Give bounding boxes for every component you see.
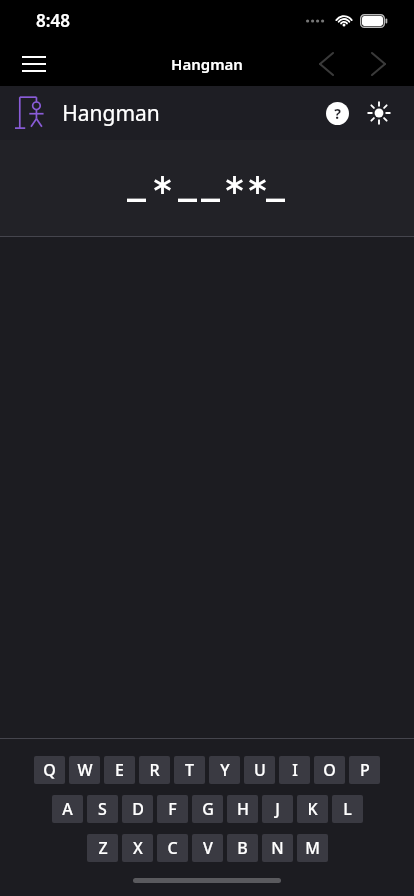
staticText: Q (43, 759, 56, 781)
button[interactable]: X (122, 834, 153, 862)
staticText: C (167, 837, 178, 859)
button[interactable]: M (297, 834, 328, 862)
staticText: I (292, 759, 298, 781)
button[interactable]: L (332, 795, 363, 823)
button[interactable]: D (122, 795, 153, 823)
staticText: Hangman (171, 54, 243, 74)
button[interactable]: K (297, 795, 328, 823)
staticText: ? (334, 104, 341, 123)
staticText: Y (220, 759, 230, 781)
button[interactable]: Forward (358, 44, 398, 84)
button[interactable]: P (349, 756, 380, 784)
button[interactable]: O (314, 756, 345, 784)
staticText: Hangman (62, 99, 160, 128)
button[interactable]: R (139, 756, 170, 784)
staticText: F (168, 798, 177, 820)
button[interactable]: U (244, 756, 275, 784)
button[interactable]: B (227, 834, 258, 862)
button[interactable]: J (262, 795, 293, 823)
staticText: M (305, 837, 320, 859)
staticText: O (323, 759, 336, 781)
staticText: T (185, 759, 194, 781)
button[interactable]: V (192, 834, 223, 862)
staticText: H (237, 798, 249, 820)
button[interactable]: G (192, 795, 223, 823)
button[interactable]: E (104, 756, 135, 784)
staticText: A (62, 798, 73, 820)
staticText: E (115, 759, 124, 781)
button[interactable]: N (262, 834, 293, 862)
staticText: N (271, 837, 284, 859)
button[interactable]: Brightness (362, 96, 396, 130)
button[interactable]: F (157, 795, 188, 823)
staticText: L (343, 798, 352, 820)
button[interactable]: I (279, 756, 310, 784)
staticText: G (202, 798, 214, 820)
staticText: U (254, 759, 266, 781)
button[interactable]: W (69, 756, 100, 784)
staticText: V (203, 837, 213, 859)
button[interactable]: A (52, 795, 83, 823)
staticText: 8:48 (36, 9, 70, 32)
button[interactable]: Help (320, 96, 354, 130)
staticText: J (275, 798, 280, 820)
staticText: K (307, 798, 318, 820)
button[interactable]: C (157, 834, 188, 862)
button[interactable]: Menu (14, 44, 54, 84)
button[interactable]: Z (87, 834, 118, 862)
staticText: D (132, 798, 144, 820)
staticText: Z (98, 837, 108, 859)
staticText: P (360, 759, 370, 781)
staticText: S (98, 798, 107, 820)
staticText: X (133, 837, 143, 859)
button[interactable]: Y (209, 756, 240, 784)
button[interactable]: S (87, 795, 118, 823)
button[interactable]: Back (306, 44, 346, 84)
button[interactable]: T (174, 756, 205, 784)
staticText: W (77, 759, 93, 781)
button[interactable]: H (227, 795, 258, 823)
staticText: B (237, 837, 248, 859)
staticText: R (149, 759, 160, 781)
button[interactable]: Q (34, 756, 65, 784)
